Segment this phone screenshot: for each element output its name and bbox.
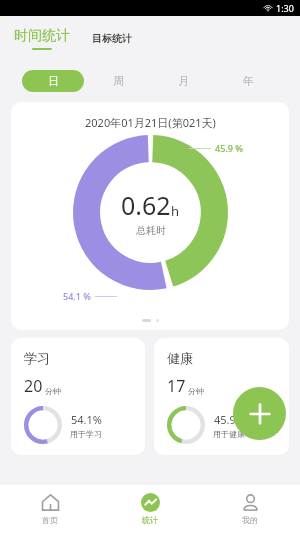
staticText: h: [171, 202, 180, 220]
staticText: 45.9 %: [215, 142, 243, 154]
button[interactable]: Add: [233, 387, 286, 440]
button[interactable]: 目标统计: [90, 28, 134, 49]
staticText: 目标统计: [92, 32, 132, 45]
staticText: 月: [178, 74, 189, 88]
staticText: 1:30: [276, 2, 294, 14]
staticText: 总耗时: [136, 224, 166, 237]
staticText: 17: [167, 375, 186, 397]
button[interactable]: 统计: [100, 485, 200, 533]
staticText: 健康: [167, 350, 193, 366]
button[interactable]: 月: [152, 70, 214, 92]
staticText: 54.1%: [71, 412, 102, 427]
staticText: 我的: [242, 515, 258, 525]
button[interactable]: 我的: [200, 485, 300, 533]
staticText: 用于健康: [213, 429, 245, 439]
staticText: 45.9%: [214, 412, 245, 427]
staticText: 统计: [142, 515, 158, 525]
button[interactable]: 学习: [11, 338, 145, 455]
button[interactable]: 首页: [0, 485, 100, 533]
staticText: 20: [24, 375, 43, 397]
staticText: 分钟: [45, 386, 61, 396]
button[interactable]: 健康: [154, 338, 289, 455]
staticText: 日: [48, 74, 59, 88]
button[interactable]: 年: [217, 70, 279, 92]
staticText: 分钟: [188, 386, 204, 396]
staticText: 54.1 %: [63, 290, 91, 302]
staticText: 2020年01月21日(第021天): [85, 115, 216, 130]
button[interactable]: 2020年01月21日(第021天): [11, 102, 289, 330]
staticText: 周: [113, 74, 124, 88]
staticText: 用于学习: [70, 429, 102, 439]
staticText: 时间统计: [14, 27, 70, 45]
staticText: 年: [243, 74, 254, 88]
button[interactable]: 时间统计: [12, 27, 72, 50]
staticText: 学习: [24, 350, 50, 366]
staticText: 0.62: [121, 188, 171, 222]
staticText: 首页: [42, 515, 58, 525]
button[interactable]: 周: [87, 70, 149, 92]
button[interactable]: 日: [22, 70, 84, 92]
